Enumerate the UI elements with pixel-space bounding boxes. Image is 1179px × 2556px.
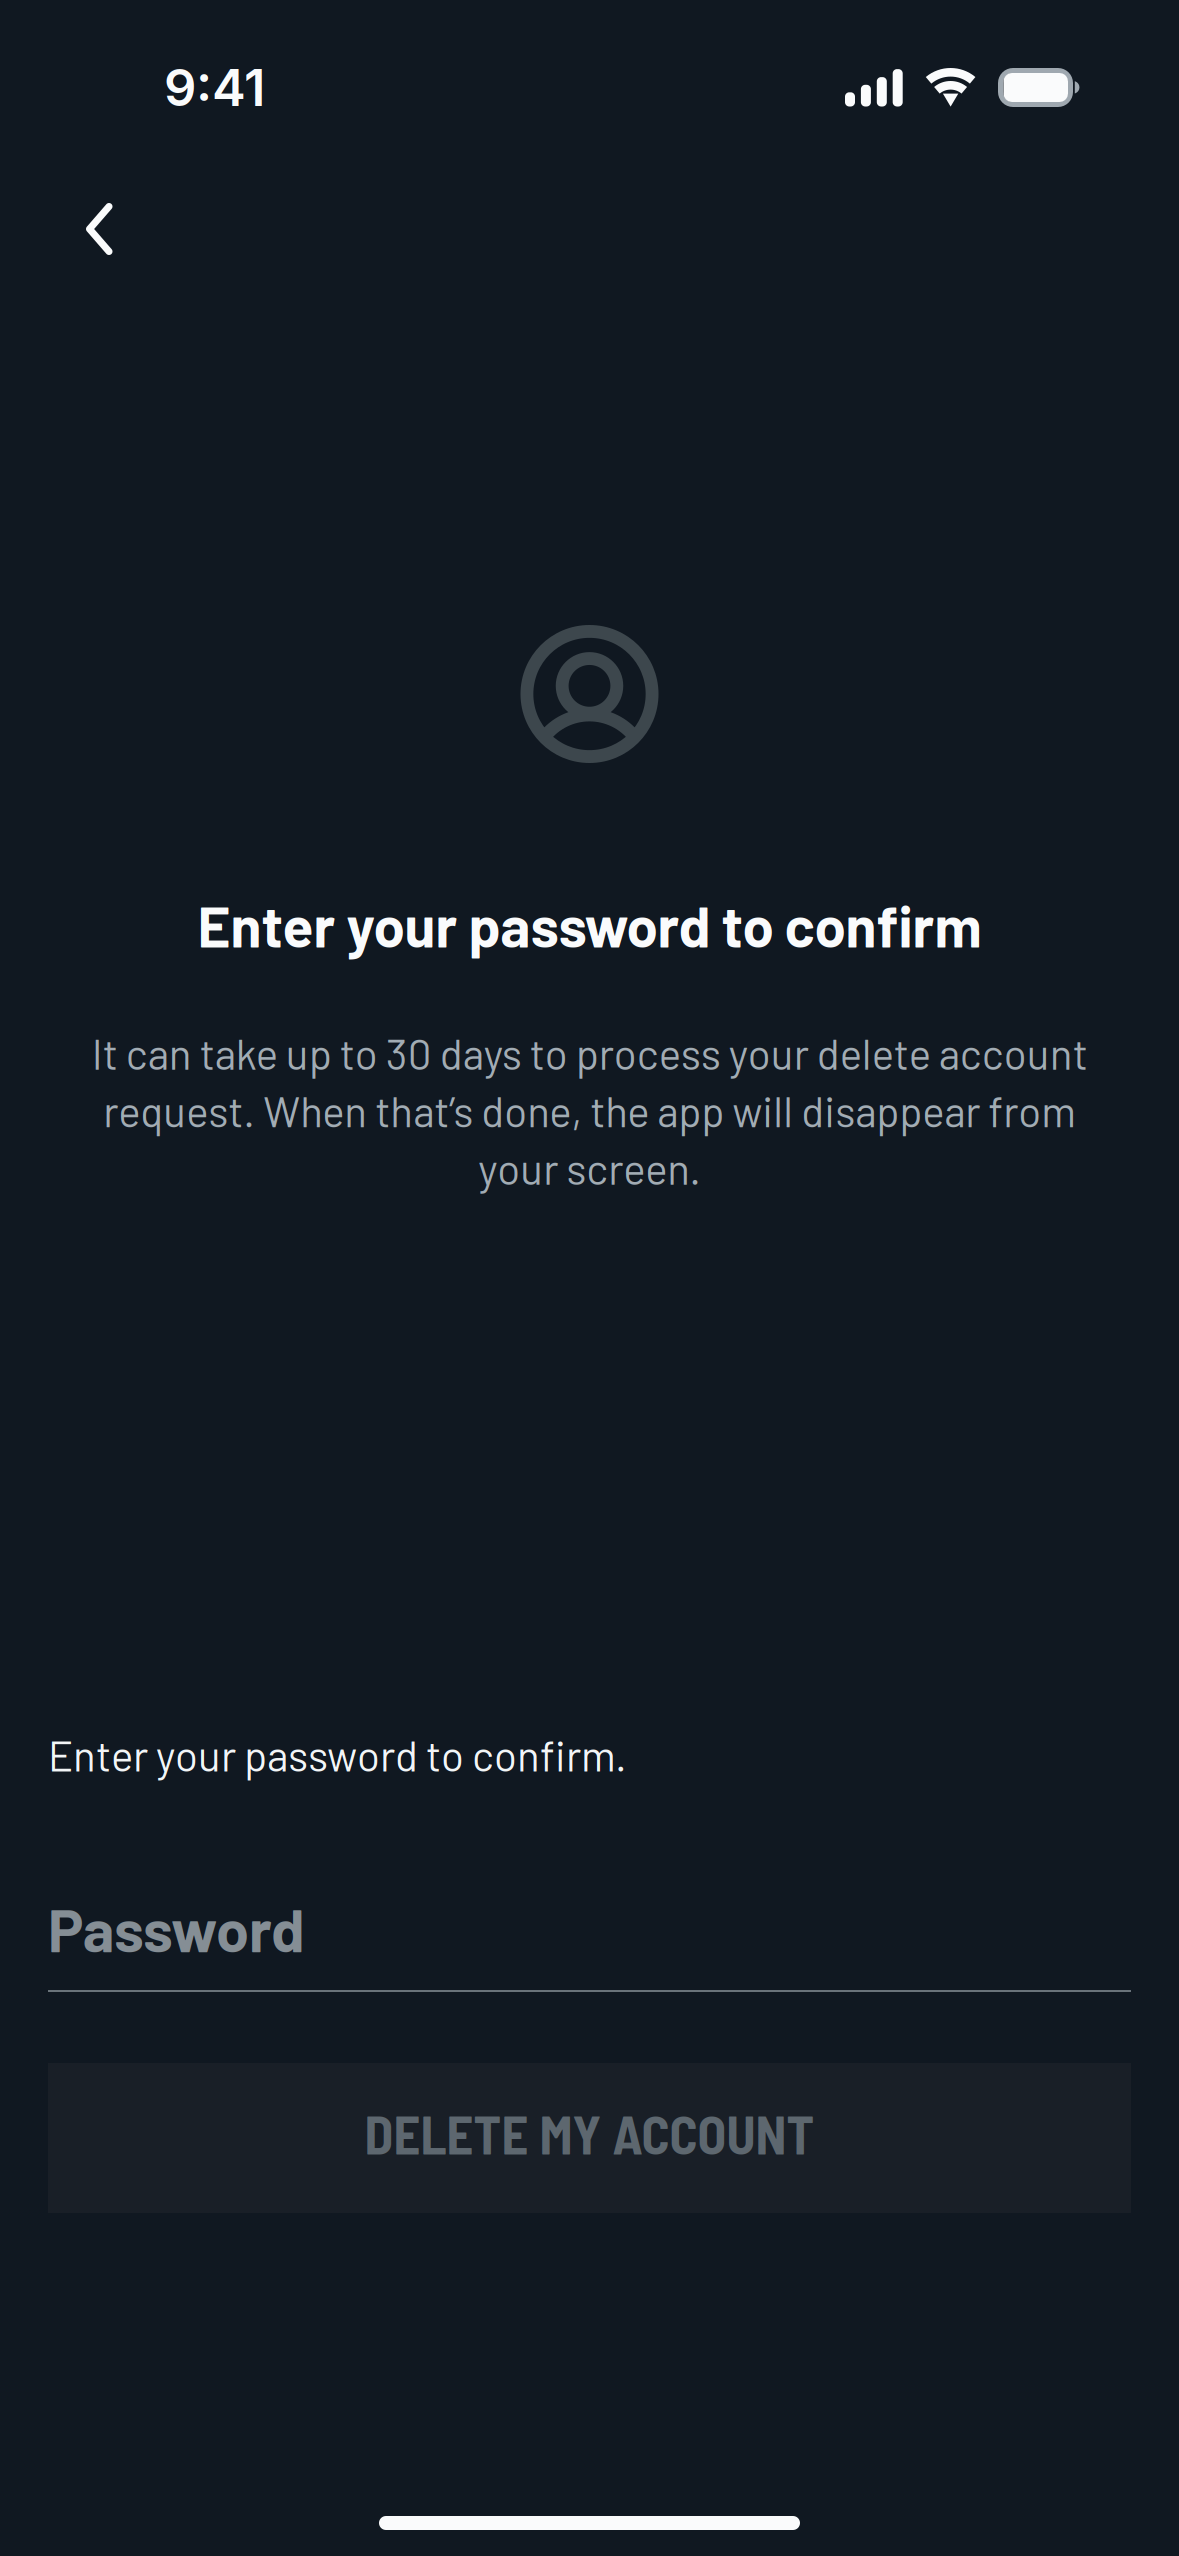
button[interactable]: DELETE MY ACCOUNT <box>48 2063 1131 2213</box>
button[interactable]: Password <box>48 1893 1131 1992</box>
staticText: DELETE MY ACCOUNT <box>364 2102 814 2165</box>
staticText: 9:41 <box>164 57 265 118</box>
staticText: Enter your password to confirm <box>197 891 981 959</box>
staticText: Enter your password to confirm. <box>48 1729 627 1780</box>
staticText: Password <box>48 1893 305 1964</box>
staticText: It can take up to 30 days to process you… <box>91 1028 1087 1193</box>
button[interactable]: Back <box>49 175 149 283</box>
